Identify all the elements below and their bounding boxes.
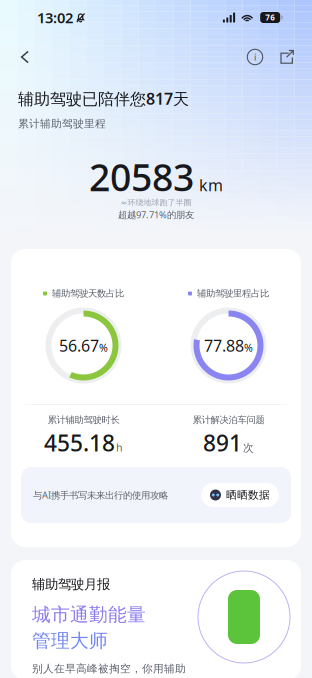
staticText: 891 [203,428,242,458]
staticText: km [199,174,223,196]
staticText: 辅助驾驶月报 [32,576,110,592]
staticText: 管理大师 [32,629,108,652]
staticText: h [116,440,123,454]
staticText: 与AI携手书写未来出行的使用攻略 [33,489,168,501]
button[interactable]: 晒晒数据 [201,483,279,507]
button[interactable]: Share [271,40,303,74]
staticText: 晒晒数据 [226,488,270,501]
staticText: 76 [265,12,275,23]
staticText: i [254,51,256,63]
staticText: 77.88 [204,335,244,356]
staticText: % [99,340,108,355]
staticText: 累计解决泊车问题 [192,414,264,426]
staticText: 20583 [89,152,194,202]
staticText: 次 [243,441,254,454]
staticText: 超越97.71%的朋友 [118,208,194,221]
staticText: 别人在早高峰被掏空，你用辅助 [32,662,186,675]
staticText: % [244,340,253,355]
staticText: 辅助驾驶天数占比 [52,288,124,299]
staticText: 城市通勤能量 [32,603,146,626]
staticText: ≈环绕地球跑了半圈 [120,198,191,207]
staticText: 累计辅助驾驶里程 [18,117,106,130]
staticText: 辅助驾驶里程占比 [197,288,269,299]
staticText: 辅助驾驶已陪伴您817天 [18,88,189,109]
button[interactable]: Back [8,40,42,74]
staticText: 455.18 [44,428,115,458]
staticText: 56.67 [59,335,99,356]
staticText: 累计辅助驾驶时长 [47,414,119,426]
staticText: 13:02 [37,8,73,27]
button[interactable]: Info [239,40,271,74]
